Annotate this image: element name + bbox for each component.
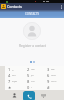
- staticText: CONTACTS: [25, 12, 39, 16]
- button[interactable]: ∗: [5, 84, 24, 90]
- staticText: JKL: [31, 74, 34, 77]
- button[interactable]: 7: [5, 78, 24, 84]
- staticText: ∞: [12, 69, 14, 71]
- staticText: 0: [27, 85, 30, 90]
- staticText: 5: [27, 73, 30, 78]
- staticText: MNO: [51, 74, 56, 77]
- button[interactable]: More options: [58, 3, 64, 10]
- button[interactable]: 6: [44, 72, 64, 78]
- staticText: 2: [27, 67, 30, 72]
- staticText: +: [31, 86, 33, 89]
- button[interactable]: 0: [24, 84, 44, 90]
- staticText: GHI: [12, 74, 16, 77]
- button[interactable]: Add contact: [10, 90, 19, 100]
- staticText: TUV: [31, 80, 35, 83]
- staticText: 9: [47, 79, 50, 84]
- button[interactable]: 5: [24, 72, 44, 78]
- staticText: PQRS: [12, 80, 18, 83]
- button[interactable]: 3: [44, 66, 64, 72]
- staticText: #: [47, 85, 50, 90]
- staticText: 3: [47, 67, 50, 72]
- button[interactable]: 1: [5, 66, 24, 72]
- staticText: DEF: [51, 68, 55, 71]
- button[interactable]: Contacts app icon: [1, 4, 6, 9]
- staticText: WXYZ: [51, 80, 57, 83]
- button[interactable]: 4: [5, 72, 24, 78]
- button[interactable]: Hide keypad: [39, 90, 48, 100]
- button[interactable]: #: [44, 84, 64, 90]
- staticText: 7: [8, 79, 11, 84]
- button[interactable]: 8: [24, 78, 44, 84]
- staticText: Contacts: [7, 4, 23, 9]
- staticText: 6: [47, 73, 50, 78]
- staticText: Register a contact: [19, 44, 46, 48]
- staticText: ABC: [31, 68, 35, 71]
- button[interactable]: 9: [44, 78, 64, 84]
- staticText: 8: [27, 79, 30, 84]
- button[interactable]: 2: [24, 66, 44, 72]
- staticText: ∗: [8, 85, 12, 90]
- staticText: 1: [8, 67, 11, 72]
- staticText: 4: [8, 73, 11, 78]
- button[interactable]: Call: [23, 91, 35, 100]
- button[interactable]: CONTACTS: [0, 10, 64, 18]
